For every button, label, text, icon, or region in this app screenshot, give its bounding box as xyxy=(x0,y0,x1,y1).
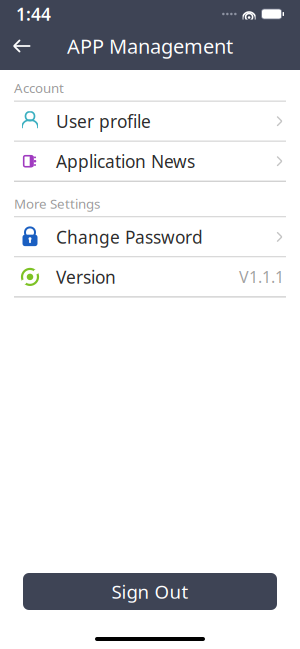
staticText: Version xyxy=(56,265,116,288)
staticText: 1:44 xyxy=(16,2,51,25)
staticText: Account xyxy=(14,79,64,97)
button[interactable]: Sign Out xyxy=(23,573,277,610)
button[interactable]: Application News xyxy=(0,142,300,181)
staticText: V1.1.1 xyxy=(239,266,284,287)
button[interactable]: Version xyxy=(0,257,300,296)
staticText: More Settings xyxy=(14,195,100,212)
staticText: APP Management xyxy=(67,33,233,59)
staticText: Application News xyxy=(56,150,195,173)
staticText: User profile xyxy=(56,110,151,133)
button[interactable]: Back xyxy=(0,28,44,64)
staticText: Sign Out xyxy=(111,579,188,604)
button[interactable]: User profile xyxy=(0,102,300,141)
button[interactable]: Change Password xyxy=(0,217,300,256)
staticText: Change Password xyxy=(56,225,203,248)
